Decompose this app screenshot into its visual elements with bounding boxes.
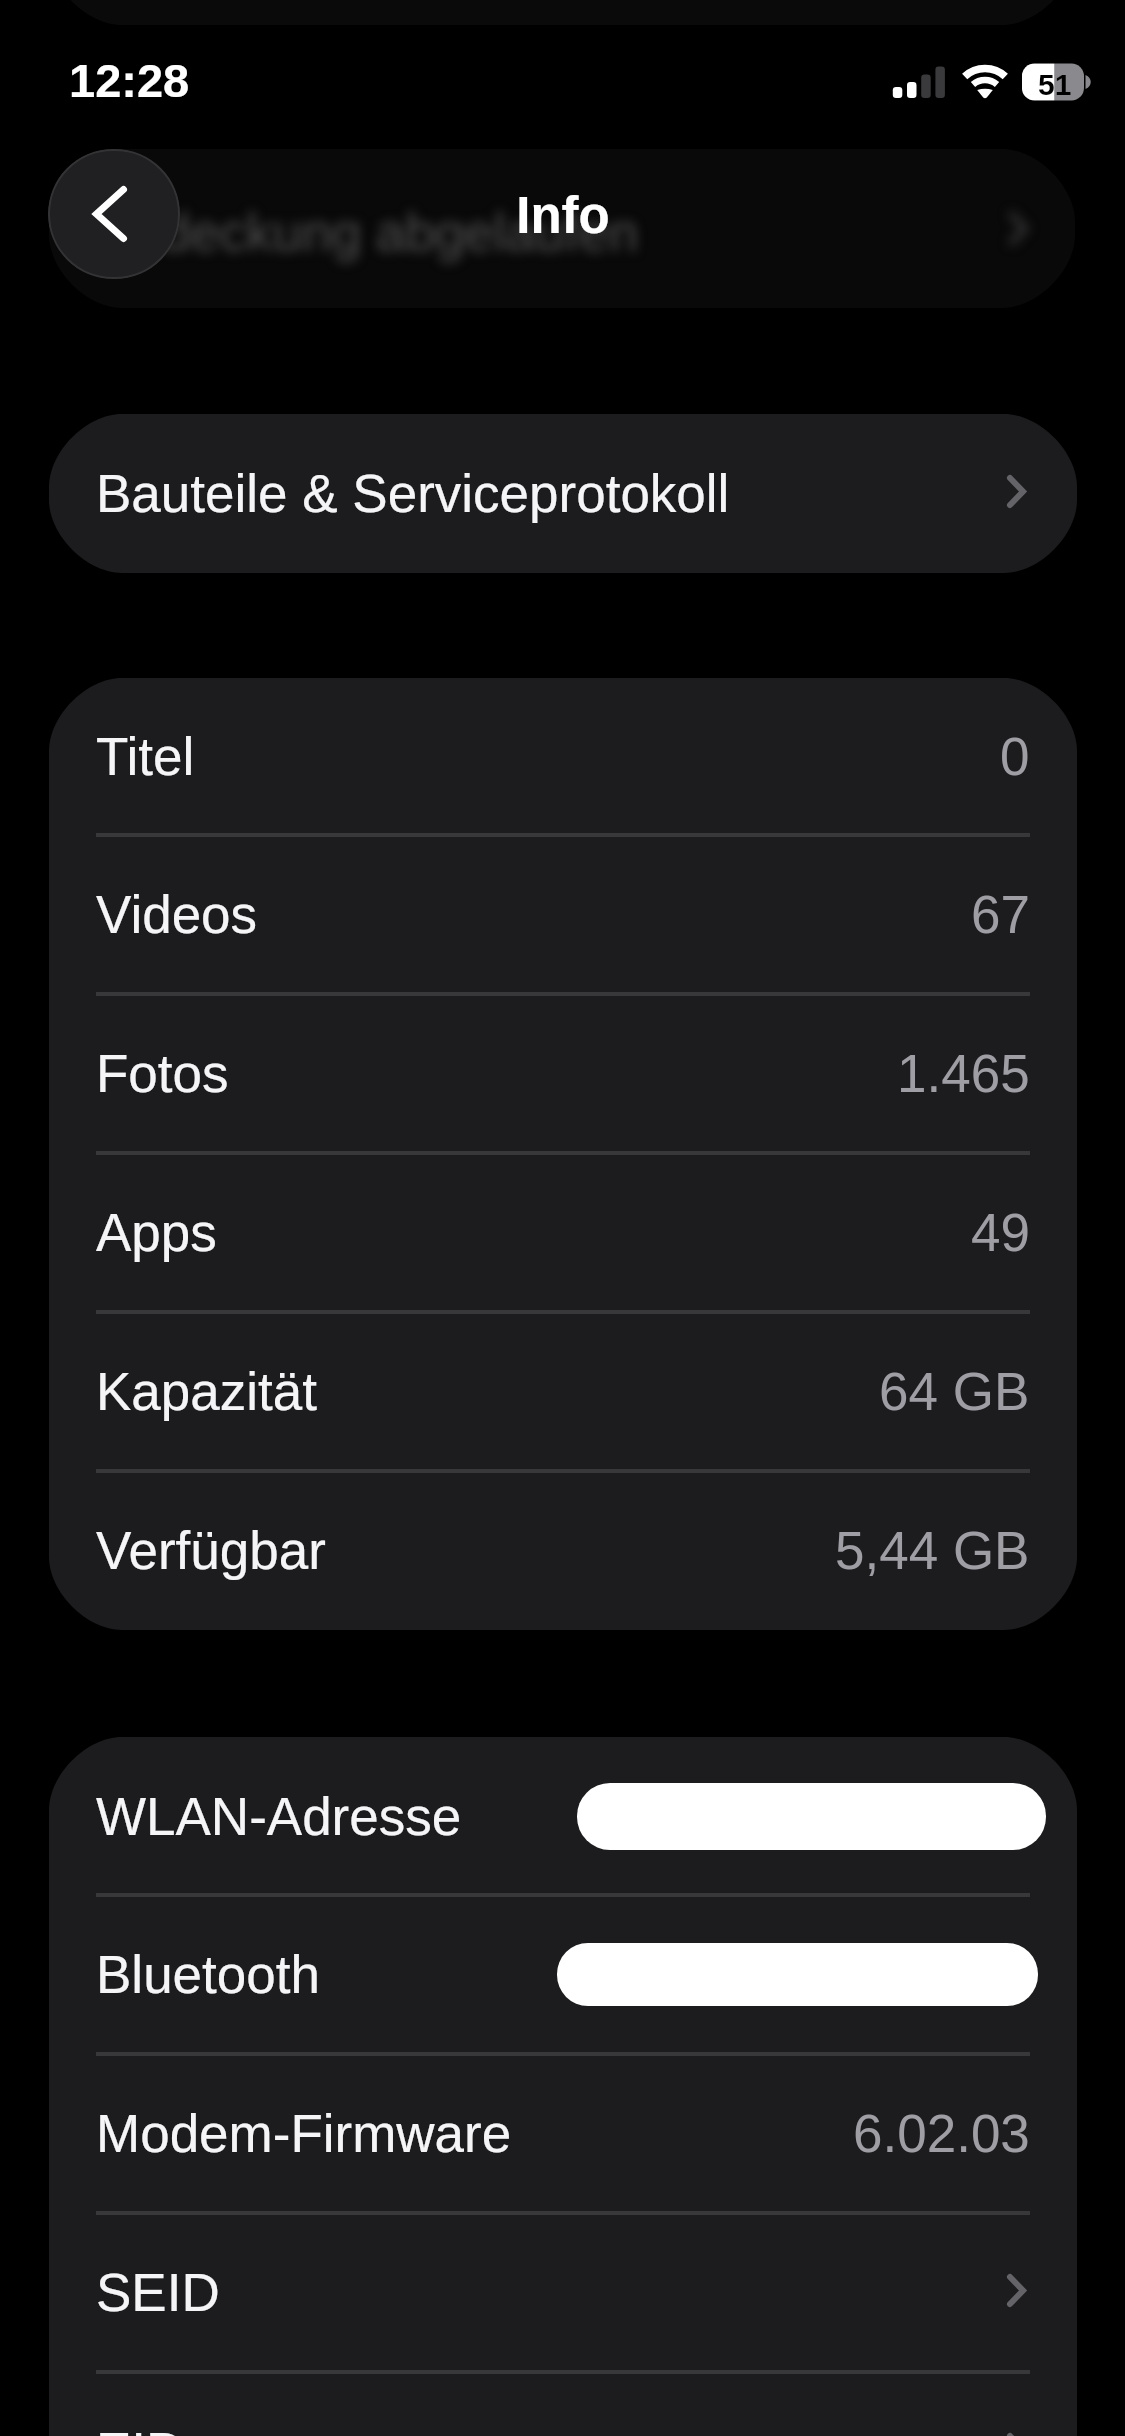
staticText: 51 <box>1038 68 1072 102</box>
button[interactable]: Bluetooth <box>49 1895 1077 2054</box>
staticText: Verfügbar <box>96 1521 326 1580</box>
staticText: Info <box>516 187 610 244</box>
staticText: 1.465 <box>897 1044 1030 1103</box>
button[interactable]: Bauteile & Serviceprotokoll <box>49 414 1077 573</box>
button[interactable]: Titel <box>49 678 1077 835</box>
staticText: Kapazität <box>96 1362 317 1421</box>
staticText: Fotos <box>96 1044 229 1103</box>
staticText: 64 GB <box>879 1362 1030 1421</box>
staticText: 49 <box>971 1203 1030 1262</box>
button[interactable]: Back <box>48 149 180 279</box>
button[interactable]: WLAN-Adresse <box>49 1737 1077 1895</box>
button[interactable]: Kapazität <box>49 1312 1077 1471</box>
button[interactable]: EID <box>49 2372 1077 2436</box>
button[interactable]: Verfügbar <box>49 1471 1077 1630</box>
staticText: Videos <box>96 885 258 944</box>
staticText: EID <box>96 2422 185 2436</box>
staticText: Titel <box>96 727 195 786</box>
staticText: Modem-Firmware <box>96 2104 512 2163</box>
staticText: Abdeckung abgelaufen <box>96 203 639 262</box>
staticText: 5,44 GB <box>835 1521 1030 1580</box>
button[interactable]: Videos <box>49 835 1077 994</box>
staticText: SEID <box>96 2263 220 2322</box>
button[interactable]: Modem-Firmware <box>49 2054 1077 2213</box>
button[interactable]: Apps <box>49 1153 1077 1312</box>
staticText: 67 <box>971 885 1030 944</box>
button[interactable]: Fotos <box>49 994 1077 1153</box>
staticText: Bauteile & Serviceprotokoll <box>96 464 730 523</box>
staticText: Bluetooth <box>96 1945 320 2004</box>
staticText: 0 <box>1000 727 1030 786</box>
staticText: Apps <box>96 1203 217 1262</box>
staticText: 12:28 <box>69 54 190 107</box>
staticText: WLAN-Adresse <box>96 1787 462 1846</box>
button[interactable]: SEID <box>49 2213 1077 2372</box>
staticText: 6.02.03 <box>853 2104 1030 2163</box>
